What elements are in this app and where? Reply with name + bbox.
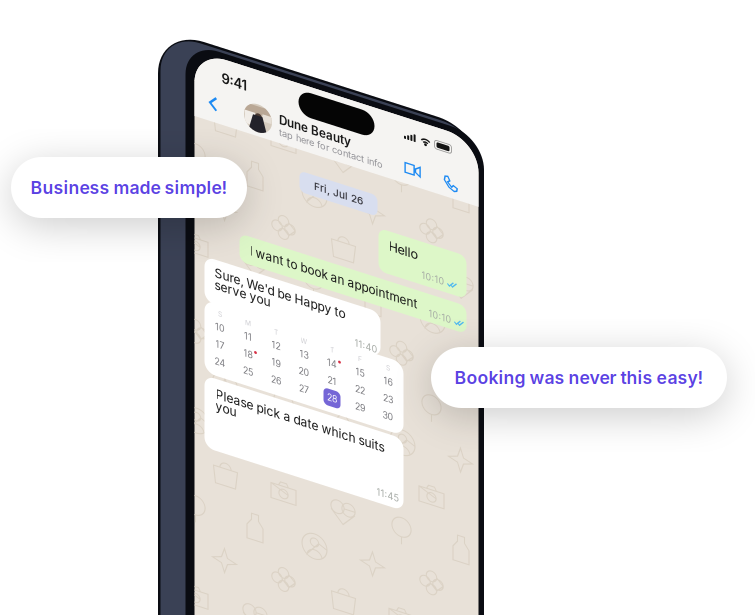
staticText: 13: [299, 303, 308, 313]
staticText: 27: [299, 337, 309, 348]
staticText: serve you: [214, 259, 270, 274]
staticText: 9:41: [221, 50, 247, 66]
staticText: 14: [327, 303, 337, 313]
button[interactable]: Business made simple!: [11, 157, 247, 218]
staticText: you: [215, 380, 236, 395]
staticText: Business made simple!: [30, 177, 227, 198]
button[interactable]: Dune Beauty: [244, 72, 383, 100]
staticText: 18: [243, 320, 252, 331]
staticText: S: [218, 290, 222, 298]
staticText: M: [245, 290, 251, 298]
staticText: I want to book an appointment: [249, 214, 417, 228]
staticText: 26: [271, 337, 281, 348]
staticText: 17: [215, 320, 224, 331]
staticText: 30: [382, 337, 393, 348]
staticText: 15: [355, 303, 364, 313]
staticText: 10:10: [421, 185, 444, 196]
staticText: 25: [243, 337, 253, 348]
staticText: 10: [215, 303, 225, 313]
staticText: S: [386, 290, 390, 298]
staticText: Please pick a date which suits: [215, 368, 384, 383]
staticText: Dune Beauty: [279, 74, 351, 88]
staticText: 11:40: [354, 274, 377, 285]
staticText: 16: [383, 303, 392, 313]
staticText: Fri, Jul 26: [314, 130, 363, 142]
staticText: 11:45: [376, 416, 399, 427]
staticText: W: [300, 290, 307, 298]
staticText: Sure, We'd be Happy to: [214, 247, 345, 262]
staticText: Booking was never this easy!: [454, 367, 703, 388]
button[interactable]: Back: [201, 71, 225, 100]
staticText: Hello: [388, 164, 418, 180]
staticText: T: [330, 290, 334, 298]
staticText: 10:10: [428, 221, 451, 232]
staticText: tap here for contact info: [279, 88, 383, 99]
staticText: 19: [271, 320, 280, 331]
staticText: 24: [214, 337, 225, 348]
staticText: 29: [355, 337, 365, 348]
button[interactable]: Booking was never this easy!: [431, 347, 727, 408]
staticText: 28: [327, 337, 337, 348]
